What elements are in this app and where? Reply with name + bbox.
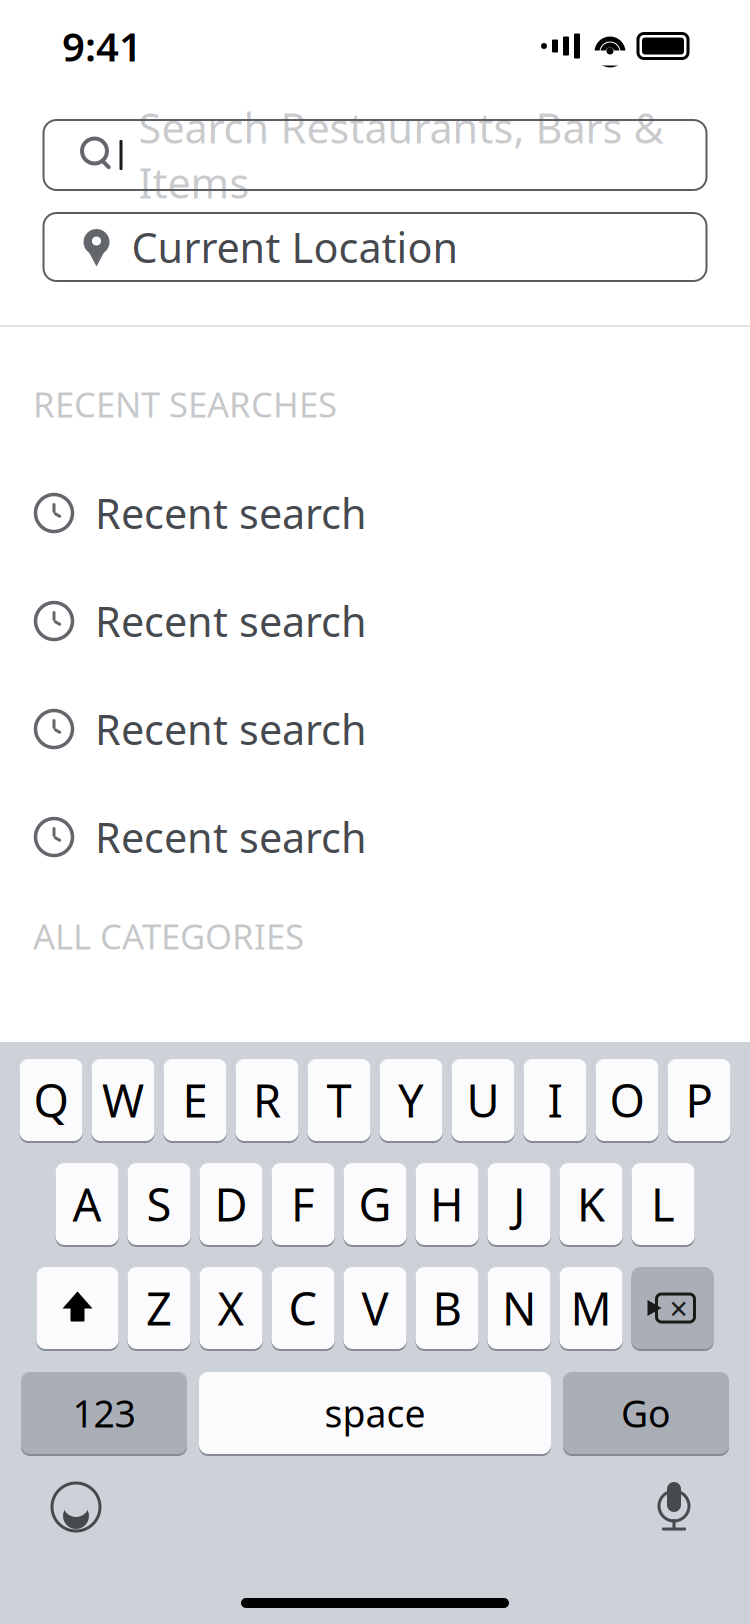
button[interactable]: G [343, 1162, 406, 1246]
staticText: K [577, 1174, 605, 1234]
button[interactable]: R [235, 1058, 298, 1142]
staticText: H [430, 1174, 464, 1234]
button[interactable]: B [415, 1266, 478, 1350]
staticText: D [214, 1174, 247, 1234]
button[interactable]: 123 [21, 1371, 187, 1455]
button[interactable]: Go [563, 1371, 729, 1455]
button[interactable]: K [559, 1162, 622, 1246]
button[interactable]: C [271, 1266, 334, 1350]
staticText: O [609, 1070, 644, 1130]
button[interactable]: T [307, 1058, 370, 1142]
staticText: T [326, 1070, 351, 1130]
button[interactable]: M [559, 1266, 622, 1350]
button[interactable]: Z [127, 1266, 190, 1350]
staticText: Current Location [131, 220, 458, 274]
staticText: F [291, 1174, 315, 1234]
button[interactable]: Q [19, 1058, 82, 1142]
button[interactable]: X [199, 1266, 262, 1350]
button[interactable]: Emoji [36, 1467, 116, 1547]
staticText: ALL CATEGORIES [33, 913, 304, 959]
button[interactable]: U [451, 1058, 514, 1142]
staticText: L [651, 1174, 675, 1234]
staticText: X [217, 1278, 244, 1338]
staticText: B [432, 1278, 461, 1338]
staticText: Recent search [95, 486, 367, 540]
button[interactable]: L [631, 1162, 694, 1246]
button[interactable]: S [127, 1162, 190, 1246]
staticText: Q [33, 1070, 68, 1130]
staticText: space [324, 1388, 425, 1438]
button[interactable]: P [667, 1058, 730, 1142]
staticText: U [466, 1070, 499, 1130]
staticText: Y [398, 1070, 424, 1130]
staticText: Recent search [95, 702, 367, 756]
button[interactable]: space [199, 1371, 551, 1455]
staticText: I [547, 1070, 562, 1130]
button[interactable]: O [595, 1058, 658, 1142]
button[interactable]: D [199, 1162, 262, 1246]
staticText: A [72, 1174, 101, 1234]
button[interactable]: H [415, 1162, 478, 1246]
staticText: P [685, 1070, 712, 1130]
staticText: × [669, 1287, 687, 1329]
staticText: Z [146, 1278, 172, 1338]
staticText: Search Restaurants, Bars & Items [138, 100, 663, 210]
staticText: S [146, 1174, 171, 1234]
button[interactable]: Search Restaurants, Bars & Items [43, 120, 706, 190]
staticText: M [570, 1278, 611, 1338]
staticText: N [502, 1278, 536, 1338]
staticText: G [358, 1174, 391, 1234]
button[interactable]: E [163, 1058, 226, 1142]
button[interactable]: Shift [36, 1266, 118, 1350]
button[interactable]: W [91, 1058, 154, 1142]
button[interactable]: V [343, 1266, 406, 1350]
button[interactable]: Current Location [43, 213, 706, 281]
staticText: Recent search [95, 810, 367, 864]
staticText: V [361, 1278, 388, 1338]
button[interactable]: Y [379, 1058, 442, 1142]
button[interactable]: Recent search [0, 459, 750, 567]
staticText: Go [621, 1388, 671, 1438]
button[interactable]: Recent search [0, 567, 750, 675]
button[interactable]: N [487, 1266, 550, 1350]
button[interactable]: F [271, 1162, 334, 1246]
staticText: R [253, 1070, 281, 1130]
button[interactable]: I [523, 1058, 586, 1142]
button[interactable]: J [487, 1162, 550, 1246]
staticText: Recent search [95, 594, 367, 648]
staticText: 123 [72, 1388, 135, 1438]
button[interactable]: Dictation [634, 1467, 714, 1547]
button[interactable]: Delete [631, 1266, 713, 1350]
button[interactable]: Recent search [0, 675, 750, 783]
staticText: E [182, 1070, 207, 1130]
staticText: J [513, 1174, 525, 1234]
staticText: 9:41 [62, 19, 142, 72]
staticText: W [102, 1070, 144, 1130]
button[interactable]: A [55, 1162, 118, 1246]
button[interactable]: Recent search [0, 783, 750, 891]
staticText: C [288, 1278, 317, 1338]
staticText: RECENT SEARCHES [33, 381, 337, 427]
